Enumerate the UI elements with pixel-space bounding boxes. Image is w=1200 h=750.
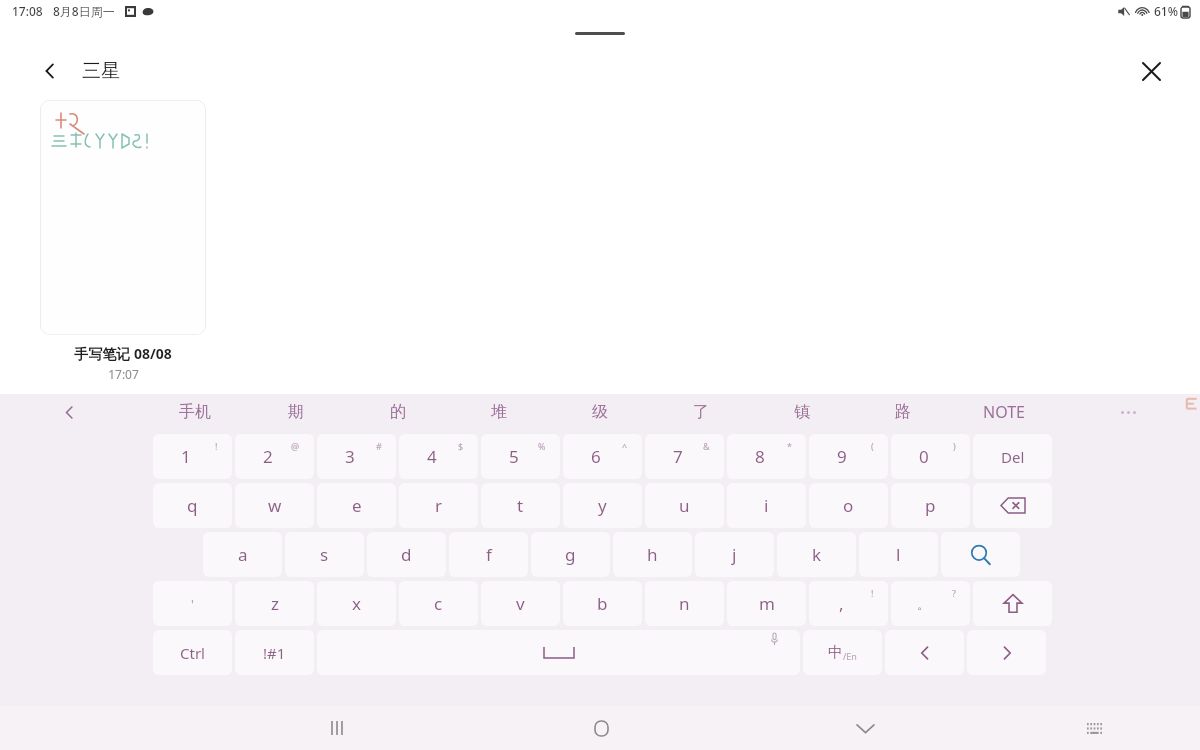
button[interactable]: Backspace: [973, 483, 1052, 528]
button[interactable]: Search: [941, 532, 1020, 577]
button[interactable]: Hide keyboard: [841, 706, 889, 750]
button[interactable]: k: [777, 532, 856, 577]
button[interactable]: ,: [809, 581, 888, 626]
button[interactable]: m: [727, 581, 806, 626]
button[interactable]: z: [235, 581, 314, 626]
staticText: Del: [1001, 447, 1025, 467]
button[interactable]: a: [203, 532, 282, 577]
button[interactable]: 0: [891, 434, 970, 479]
staticText: b: [597, 592, 608, 615]
button[interactable]: 。: [891, 581, 970, 626]
button[interactable]: x: [317, 581, 396, 626]
staticText: 堆: [491, 402, 507, 422]
button[interactable]: t: [481, 483, 560, 528]
staticText: n: [679, 592, 690, 615]
staticText: 8: [755, 445, 765, 468]
button[interactable]: 路: [858, 394, 948, 430]
button[interactable]: 1: [153, 434, 232, 479]
button[interactable]: o: [809, 483, 888, 528]
staticText: !: [215, 440, 218, 452]
button[interactable]: e: [317, 483, 396, 528]
staticText: 了: [693, 402, 709, 422]
button[interactable]: Previous suggestions: [52, 395, 86, 429]
staticText: #: [376, 440, 382, 452]
button[interactable]: u: [645, 483, 724, 528]
button[interactable]: c: [399, 581, 478, 626]
button[interactable]: f: [449, 532, 528, 577]
button[interactable]: 8: [727, 434, 806, 479]
button[interactable]: Space: [317, 630, 800, 675]
button[interactable]: Del: [973, 434, 1052, 479]
staticText: *: [787, 440, 792, 452]
staticText: NOTE: [983, 401, 1025, 423]
staticText: !#1: [263, 643, 286, 663]
button[interactable]: y: [563, 483, 642, 528]
button[interactable]: !#1: [235, 630, 314, 675]
staticText: /En: [843, 650, 857, 662]
staticText: 中: [828, 643, 843, 662]
button[interactable]: n: [645, 581, 724, 626]
staticText: 1: [181, 445, 191, 468]
staticText: 9: [837, 445, 847, 468]
button[interactable]: 手机: [150, 394, 240, 430]
button[interactable]: 了: [656, 394, 746, 430]
button[interactable]: 2: [235, 434, 314, 479]
staticText: Ctrl: [180, 643, 205, 663]
staticText: 8月8日周一: [53, 3, 115, 19]
staticText: 路: [895, 402, 911, 422]
staticText: 三星: [82, 59, 120, 83]
button[interactable]: 6: [563, 434, 642, 479]
staticText: o: [843, 494, 854, 517]
button[interactable]: 5: [481, 434, 560, 479]
button[interactable]: More options: [1108, 394, 1148, 430]
staticText: p: [925, 494, 936, 517]
button[interactable]: NOTE: [959, 394, 1049, 430]
button[interactable]: 级: [555, 394, 645, 430]
button[interactable]: Change keyboard: [1072, 706, 1116, 750]
staticText: 的: [390, 402, 406, 422]
button[interactable]: Close: [1130, 50, 1172, 92]
staticText: v: [516, 592, 525, 615]
staticText: r: [435, 494, 443, 517]
button[interactable]: d: [367, 532, 446, 577]
staticText: 17:07: [108, 366, 139, 382]
button[interactable]: v: [481, 581, 560, 626]
staticText: ?: [952, 587, 956, 599]
button[interactable]: Cursor left: [885, 630, 964, 675]
button[interactable]: Back: [30, 51, 70, 91]
button[interactable]: Cursor right: [967, 630, 1046, 675]
button[interactable]: Language: [803, 630, 882, 675]
button[interactable]: i: [727, 483, 806, 528]
button[interactable]: 的: [353, 394, 443, 430]
button[interactable]: 堆: [454, 394, 544, 430]
button[interactable]: 4: [399, 434, 478, 479]
button[interactable]: 7: [645, 434, 724, 479]
button[interactable]: 3: [317, 434, 396, 479]
staticText: x: [352, 592, 361, 615]
button[interactable]: Ctrl: [153, 630, 232, 675]
button[interactable]: r: [399, 483, 478, 528]
button[interactable]: s: [285, 532, 364, 577]
button[interactable]: Shift: [973, 581, 1052, 626]
button[interactable]: l: [859, 532, 938, 577]
button[interactable]: [40, 100, 206, 335]
staticText: 6: [591, 445, 601, 468]
button[interactable]: g: [531, 532, 610, 577]
staticText: 5: [509, 445, 519, 468]
button[interactable]: b: [563, 581, 642, 626]
staticText: &: [703, 440, 710, 452]
button[interactable]: 镇: [757, 394, 847, 430]
button[interactable]: Recent apps: [313, 706, 361, 750]
staticText: 镇: [794, 402, 810, 422]
button[interactable]: j: [695, 532, 774, 577]
staticText: j: [732, 543, 737, 566]
button[interactable]: q: [153, 483, 232, 528]
staticText: i: [764, 494, 769, 517]
button[interactable]: h: [613, 532, 692, 577]
button[interactable]: Home: [577, 706, 625, 750]
button[interactable]: 期: [251, 394, 341, 430]
button[interactable]: w: [235, 483, 314, 528]
button[interactable]: p: [891, 483, 970, 528]
button[interactable]: 9: [809, 434, 888, 479]
